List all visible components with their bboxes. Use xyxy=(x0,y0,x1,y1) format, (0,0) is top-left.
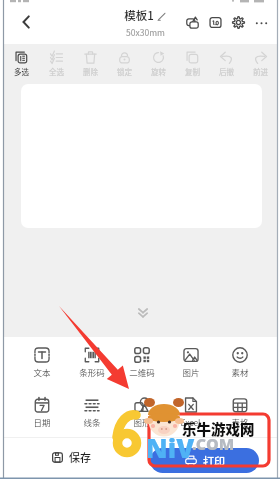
button[interactable]: 线条 xyxy=(67,387,117,437)
button[interactable]: 前进 xyxy=(243,44,277,84)
button[interactable]: 多选 xyxy=(4,44,39,84)
staticText: 打印 xyxy=(203,453,225,469)
staticText: 全选 xyxy=(49,66,64,77)
staticText: 删除 xyxy=(83,66,98,77)
staticText: 日期 xyxy=(33,416,51,428)
staticText: Excel xyxy=(180,416,201,428)
staticText: 二维码 xyxy=(129,366,155,378)
button[interactable]: 复制 xyxy=(175,44,209,84)
button[interactable]: Settings xyxy=(227,7,250,37)
button[interactable]: 删除 xyxy=(73,44,107,84)
button[interactable]: 保存 xyxy=(44,440,99,474)
staticText: 50x30mm xyxy=(126,26,165,38)
staticText: 素材 xyxy=(231,366,249,378)
button[interactable]: 全选 xyxy=(39,44,73,84)
button[interactable]: 表格 xyxy=(215,387,264,437)
staticText: 图片 xyxy=(182,366,200,378)
staticText: .COM xyxy=(192,433,235,455)
staticText: 旋转 xyxy=(151,66,166,77)
staticText: 多选 xyxy=(14,66,29,77)
button[interactable]: 条形码 xyxy=(67,337,117,387)
button[interactable]: 图形 xyxy=(117,387,166,437)
staticText: 文本 xyxy=(33,366,51,378)
button[interactable]: 日期 xyxy=(17,387,67,437)
staticText: NiV xyxy=(146,430,195,465)
staticText: 复制 xyxy=(185,66,200,77)
button[interactable]: 二维码 xyxy=(117,337,166,387)
staticText: 后撤 xyxy=(219,66,234,77)
button[interactable]: 文本 xyxy=(17,337,67,387)
button[interactable]: Excel xyxy=(166,387,215,437)
button[interactable]: 锁定 xyxy=(107,44,141,84)
button[interactable]: Back xyxy=(9,0,42,44)
staticText: 锁定 xyxy=(117,66,132,77)
button[interactable]: 图片 xyxy=(166,337,215,387)
button[interactable]: Duplicate template xyxy=(181,7,204,37)
button[interactable]: More options xyxy=(250,7,273,37)
staticText: 图形 xyxy=(133,416,151,428)
staticText: 条形码 xyxy=(79,366,105,378)
button[interactable]: Template version xyxy=(204,7,227,37)
staticText: 表格 xyxy=(231,416,249,428)
staticText: 保存 xyxy=(69,449,91,465)
button[interactable]: 打印 xyxy=(150,448,259,473)
staticText: 模板1 xyxy=(124,7,154,24)
button[interactable]: 素材 xyxy=(215,337,264,387)
button[interactable]: Collapse panel xyxy=(132,303,154,319)
button[interactable]: 后撤 xyxy=(209,44,243,84)
button[interactable]: 旋转 xyxy=(141,44,175,84)
staticText: 乐牛游戏网 xyxy=(182,418,255,439)
staticText: 线条 xyxy=(83,416,101,428)
staticText: 前进 xyxy=(253,66,268,77)
